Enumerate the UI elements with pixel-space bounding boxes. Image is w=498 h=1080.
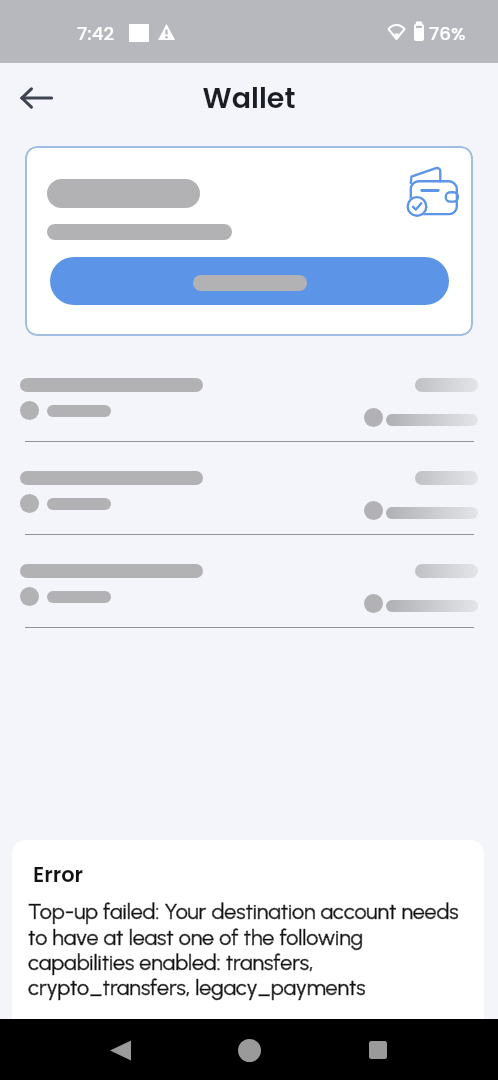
button[interactable]	[50, 257, 449, 305]
button[interactable]: Back	[12, 74, 62, 124]
staticText: Wallet	[0, 78, 498, 118]
staticText: Top-up failed: Your destination account …	[28, 899, 459, 1000]
staticText: Error	[33, 860, 84, 889]
staticText: 7:42	[77, 21, 115, 47]
button[interactable]: Home	[229, 1030, 269, 1070]
button[interactable]: Back	[100, 1030, 140, 1070]
button[interactable]	[0, 463, 498, 556]
button[interactable]: Recent apps	[358, 1030, 398, 1070]
button[interactable]	[0, 370, 498, 463]
button[interactable]	[25, 146, 473, 336]
staticText: Top-up failed: Your destination account …	[28, 899, 459, 1000]
staticText: 76%	[429, 21, 466, 47]
button[interactable]	[0, 556, 498, 649]
